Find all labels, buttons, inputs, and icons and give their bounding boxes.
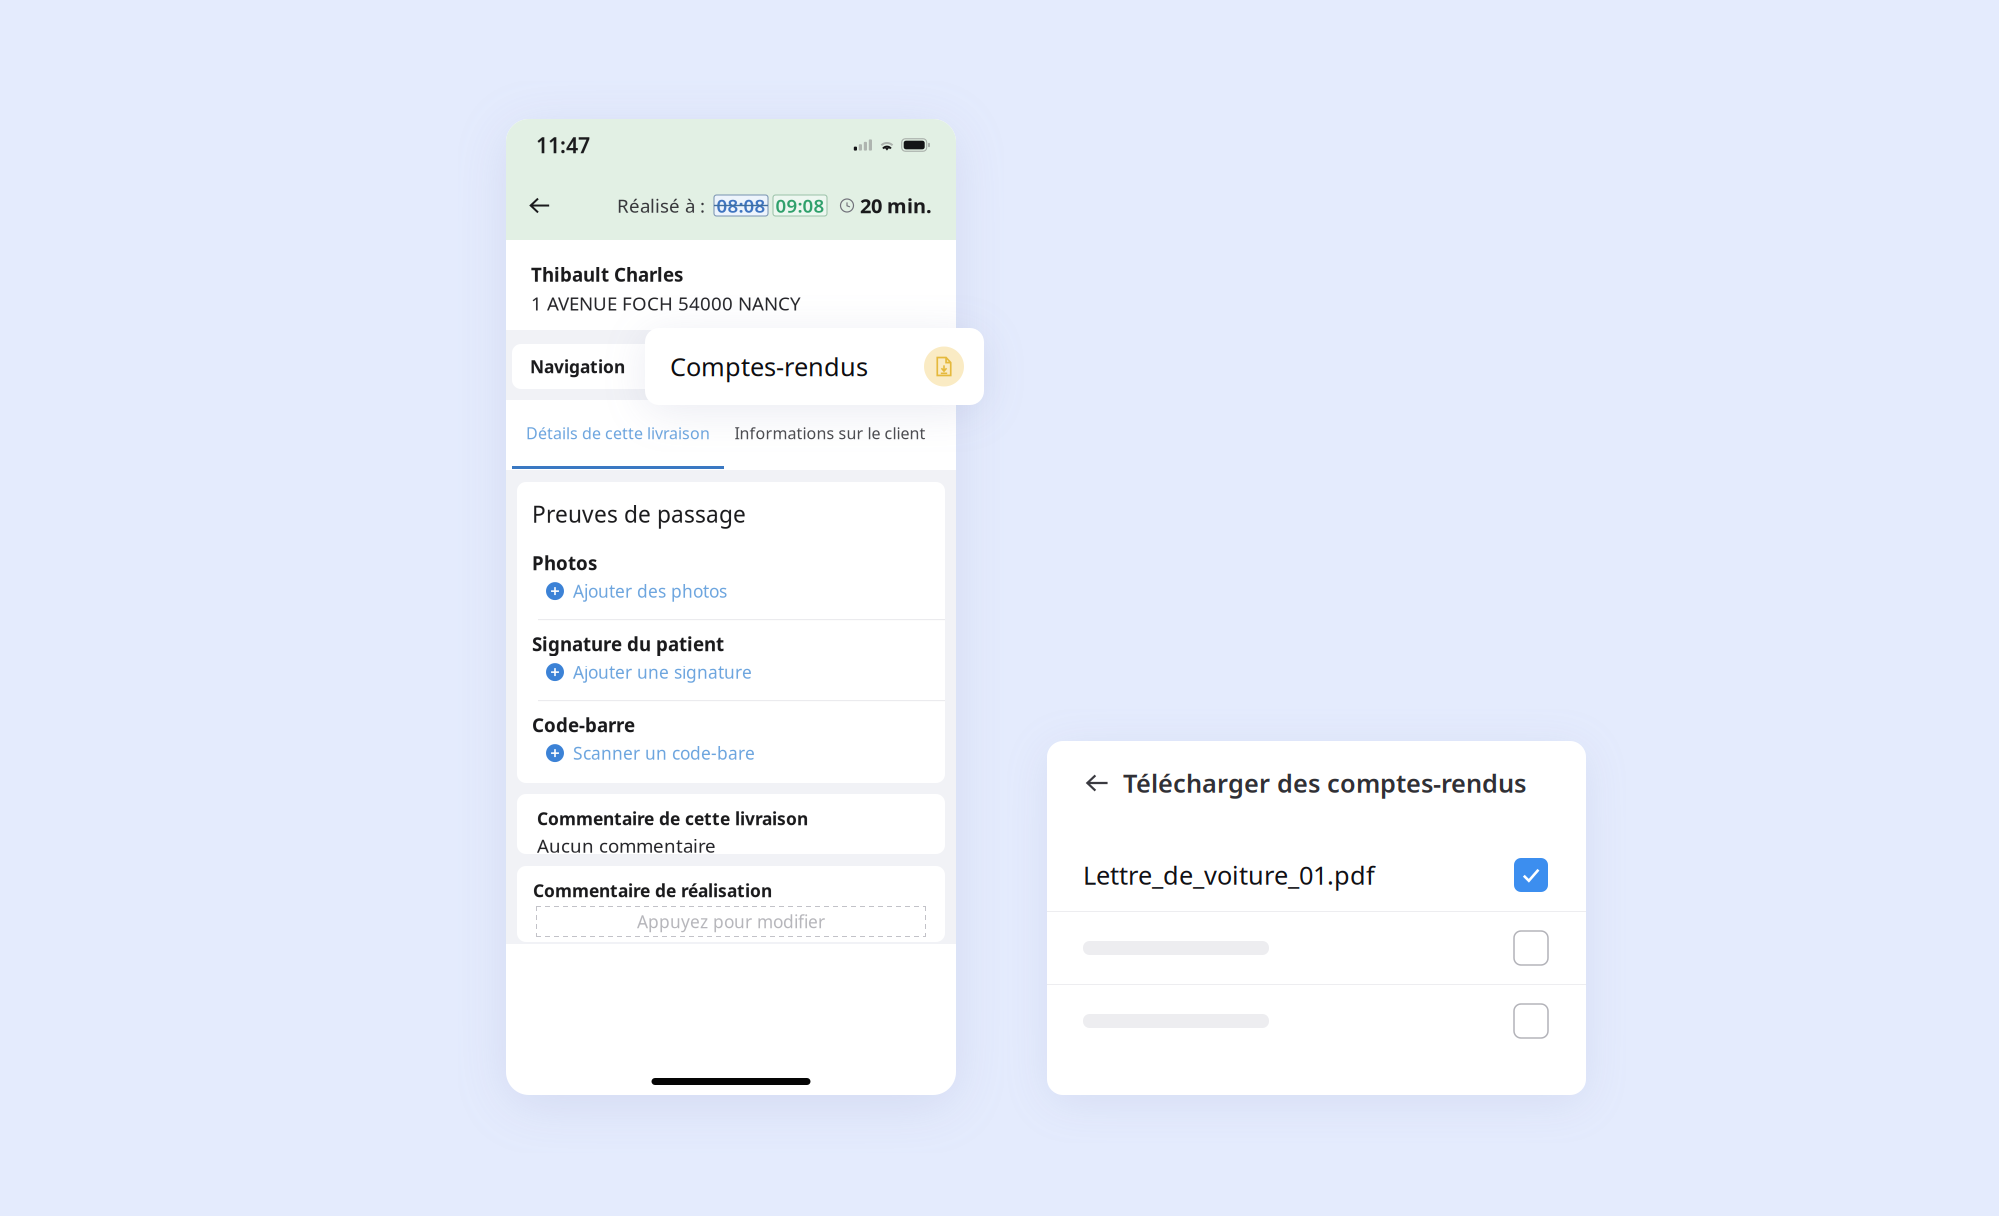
button[interactable]: Appuyez pour modifier bbox=[536, 906, 926, 937]
staticText: Ajouter des photos bbox=[573, 580, 727, 603]
staticText: Commentaire de réalisation bbox=[533, 879, 772, 902]
staticText: Commentaire de cette livraison bbox=[537, 807, 808, 830]
staticText: Télécharger des comptes-rendus bbox=[1123, 766, 1526, 800]
button[interactable]: Navigation bbox=[512, 344, 950, 389]
staticText: 20 min. bbox=[860, 192, 932, 219]
button[interactable]: Back bbox=[1082, 768, 1112, 798]
staticText: Ajouter une signature bbox=[573, 661, 752, 684]
staticText: 09:08 bbox=[775, 193, 824, 218]
staticText: Photos bbox=[532, 551, 597, 575]
staticText: 1 AVENUE FOCH 54000 NANCY bbox=[531, 291, 801, 316]
staticText: Lettre_de_voiture_01.pdf bbox=[1083, 858, 1375, 892]
staticText: Comptes-rendus bbox=[670, 350, 868, 383]
staticText: Thibault Charles bbox=[531, 262, 683, 287]
button[interactable]: Informations sur le client bbox=[724, 400, 936, 466]
staticText: 08:08 bbox=[716, 193, 765, 218]
staticText: Informations sur le client bbox=[734, 422, 925, 444]
button[interactable] bbox=[1047, 985, 1586, 1057]
staticText: Détails de cette livraison bbox=[526, 422, 710, 444]
button[interactable]: Détails de cette livraison bbox=[512, 400, 724, 466]
staticText: Navigation bbox=[530, 355, 625, 378]
button[interactable]: Ajouter des photos bbox=[532, 578, 927, 604]
staticText: 11:47 bbox=[536, 131, 590, 159]
staticText: Signature du patient bbox=[532, 632, 724, 656]
staticText: Scanner un code-bare bbox=[573, 742, 755, 765]
button[interactable]: Ajouter une signature bbox=[532, 659, 927, 685]
staticText: Aucun commentaire bbox=[537, 833, 716, 858]
staticText: Réalisé à : bbox=[617, 193, 705, 218]
button[interactable]: Lettre_de_voiture_01.pdf bbox=[1047, 839, 1586, 911]
button[interactable]: Scanner un code-bare bbox=[532, 740, 927, 766]
staticText: Code-barre bbox=[532, 713, 635, 737]
button[interactable]: Comptes-rendus bbox=[645, 328, 984, 405]
staticText: Appuyez pour modifier bbox=[637, 910, 825, 933]
button[interactable]: Back bbox=[529, 185, 569, 225]
button[interactable] bbox=[1047, 912, 1586, 984]
staticText: Preuves de passage bbox=[532, 499, 746, 529]
